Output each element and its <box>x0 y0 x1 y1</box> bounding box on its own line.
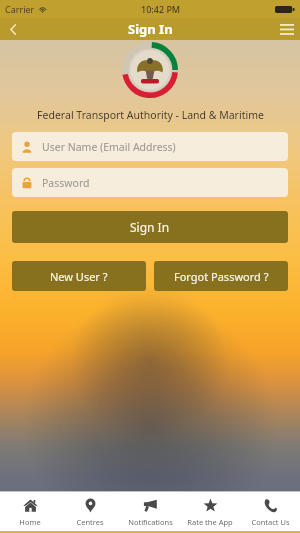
button[interactable]: Sign In <box>12 211 288 243</box>
button[interactable]: User Name (Email Address) <box>12 132 288 161</box>
button[interactable]: Contact Us <box>240 492 300 531</box>
button[interactable]: New User ? <box>12 261 146 291</box>
staticText: Carrier <box>5 3 35 15</box>
staticText: New User ? <box>50 269 108 284</box>
staticText: Forgot Password ? <box>174 269 269 284</box>
button[interactable]: Notifications <box>120 492 180 531</box>
staticText: Rate the App <box>187 517 233 527</box>
staticText: Password <box>42 176 90 190</box>
staticText: Sign In <box>128 20 173 38</box>
button[interactable]: Menu <box>274 18 300 40</box>
staticText: Sign In <box>130 219 170 235</box>
button[interactable]: Password <box>12 168 288 197</box>
staticText: Home <box>19 517 41 527</box>
staticText: Centres <box>76 517 104 527</box>
button[interactable]: Forgot Password ? <box>154 261 288 291</box>
staticText: 10:42 PM <box>141 3 181 15</box>
button[interactable]: Home <box>0 492 60 531</box>
staticText: Contact Us <box>251 517 290 527</box>
button[interactable]: Rate the App <box>180 492 240 531</box>
button[interactable]: Centres <box>60 492 120 531</box>
staticText: User Name (Email Address) <box>42 140 176 154</box>
staticText: Notifications <box>128 517 173 527</box>
button[interactable]: Back <box>0 18 26 40</box>
staticText: Federal Transport Authority - Land & Mar… <box>37 108 264 122</box>
